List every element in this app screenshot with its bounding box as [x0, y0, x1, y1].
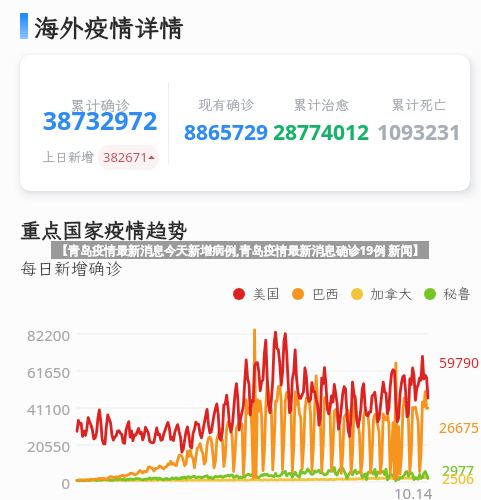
- staticText: 累计确诊: [20, 96, 180, 116]
- button[interactable]: 加拿大: [351, 285, 412, 303]
- button[interactable]: 秘鲁: [424, 285, 471, 303]
- staticText: 每日新增确诊: [20, 257, 122, 279]
- button[interactable]: 累计治愈: [271, 92, 371, 144]
- staticText: 2506: [442, 469, 475, 488]
- staticText: 59790: [439, 353, 480, 372]
- staticText: 38732972: [20, 103, 180, 137]
- staticText: 0: [10, 473, 70, 493]
- staticText: 巴西: [311, 285, 339, 303]
- staticText: 秘鲁: [443, 285, 471, 303]
- staticText: 382671: [103, 148, 148, 166]
- staticText: 61650: [10, 362, 70, 382]
- staticText: 82200: [10, 325, 70, 345]
- staticText: 【青岛疫情最新消息今天新增病例,青岛疫情最新消息确诊19例 新闻】: [56, 242, 425, 258]
- staticText: 41100: [10, 399, 70, 419]
- button[interactable]: 累计死亡: [369, 92, 469, 144]
- staticText: 加拿大: [370, 285, 412, 303]
- staticText: 20550: [10, 436, 70, 456]
- staticText: 1093231: [369, 118, 469, 147]
- staticText: 2977: [442, 461, 475, 480]
- staticText: 累计治愈: [271, 96, 371, 114]
- button[interactable]: 现有确诊: [176, 92, 276, 144]
- staticText: 美国: [252, 285, 280, 303]
- staticText: 8865729: [176, 118, 276, 147]
- staticText: 累计死亡: [369, 96, 469, 114]
- button[interactable]: 重点国家疫情趋势: [20, 216, 188, 244]
- button[interactable]: 巴西: [292, 285, 339, 303]
- button[interactable]: 美国: [233, 285, 280, 303]
- staticText: 28774012: [271, 118, 371, 147]
- button[interactable]: 海外疫情详情: [34, 11, 185, 44]
- staticText: 现有确诊: [176, 96, 276, 114]
- staticText: 10.14: [394, 483, 433, 500]
- button[interactable]: 累计确诊: [20, 55, 470, 191]
- staticText: 26675: [439, 418, 480, 437]
- staticText: 上日新增: [42, 149, 95, 166]
